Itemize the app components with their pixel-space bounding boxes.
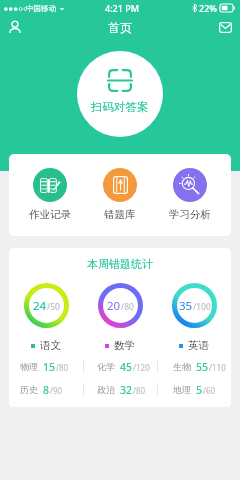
button[interactable]: 错题库 <box>85 154 155 236</box>
staticText: /110 <box>209 362 226 373</box>
staticText: 作业记录 <box>29 208 71 221</box>
staticText: 45 <box>120 360 133 374</box>
staticText: 5 <box>196 383 203 397</box>
staticText: 扫码对答案 <box>91 100 149 114</box>
staticText: /120 <box>133 362 150 373</box>
staticText: 4:21 PM <box>105 2 139 14</box>
staticText: 英语 <box>188 339 209 352</box>
button[interactable]: Messages <box>212 15 238 39</box>
staticText: /90 <box>50 385 63 396</box>
staticText: 地理 <box>173 384 191 395</box>
staticText: /80 <box>56 362 69 373</box>
button[interactable]: 作业记录 <box>15 154 85 236</box>
staticText: 20 <box>107 298 121 314</box>
staticText: 24 <box>33 298 47 314</box>
staticText: 学习分析 <box>169 208 211 221</box>
button[interactable]: 扫码对答案 <box>77 51 163 137</box>
staticText: 35 <box>179 298 193 314</box>
staticText: /80 <box>121 301 134 313</box>
staticText: 15 <box>43 360 56 374</box>
staticText: 语文 <box>40 339 61 352</box>
button[interactable]: 化学 <box>84 355 157 378</box>
staticText: 生物 <box>173 361 191 372</box>
staticText: /100 <box>193 301 211 313</box>
staticText: /80 <box>133 385 146 396</box>
button[interactable]: 地理 <box>158 378 231 401</box>
button[interactable]: 生物 <box>158 355 231 378</box>
staticText: 数学 <box>114 339 135 352</box>
staticText: 化学 <box>97 361 115 372</box>
button[interactable]: 物理 <box>9 355 83 378</box>
staticText: 22% <box>199 2 217 14</box>
staticText: /50 <box>47 301 60 313</box>
staticText: 首页 <box>108 20 132 35</box>
staticText: 本周错题统计 <box>9 257 231 271</box>
staticText: 历史 <box>20 384 38 395</box>
staticText: 8 <box>43 383 50 397</box>
staticText: 政治 <box>97 384 115 395</box>
staticText: 错题库 <box>104 208 136 221</box>
staticText: 物理 <box>20 361 38 372</box>
staticText: 中国移动 <box>26 4 56 13</box>
button[interactable]: 政治 <box>84 378 157 401</box>
staticText: 32 <box>120 383 133 397</box>
button[interactable]: 学习分析 <box>155 154 225 236</box>
button[interactable]: 历史 <box>9 378 83 401</box>
staticText: /60 <box>203 385 216 396</box>
button[interactable]: Profile <box>2 15 28 39</box>
staticText: 55 <box>196 360 209 374</box>
